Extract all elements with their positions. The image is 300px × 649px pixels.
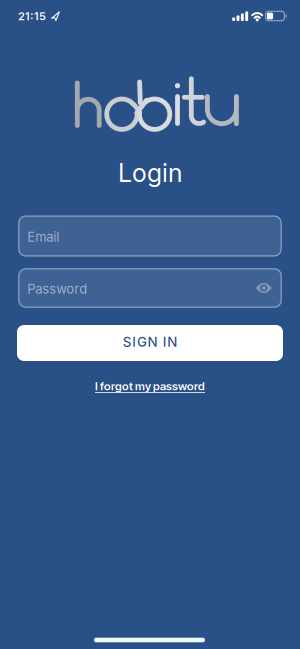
- staticText: Email: [27, 229, 59, 245]
- button[interactable]: I forgot my password: [95, 379, 205, 393]
- button[interactable]: Password: [18, 268, 282, 308]
- staticText: Login: [118, 158, 182, 188]
- staticText: Password: [27, 281, 87, 297]
- button[interactable]: Show password: [256, 282, 272, 294]
- staticText: SIGN IN: [123, 334, 177, 350]
- staticText: I forgot my password: [95, 379, 205, 393]
- button[interactable]: Email: [18, 215, 282, 256]
- staticText: 21:15: [18, 9, 46, 23]
- button[interactable]: SIGN IN: [17, 325, 283, 361]
